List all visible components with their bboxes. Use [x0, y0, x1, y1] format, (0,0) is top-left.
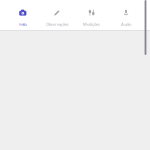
staticText: Foto	[19, 21, 26, 27]
staticText: Áudio	[121, 21, 131, 27]
button[interactable]: Foto	[6, 0, 40, 30]
staticText: Observações	[46, 21, 69, 27]
button[interactable]: Áudio	[109, 0, 143, 30]
button[interactable]: Observações	[40, 0, 74, 30]
staticText: Medições	[83, 21, 100, 27]
button[interactable]: Medições	[74, 0, 109, 30]
